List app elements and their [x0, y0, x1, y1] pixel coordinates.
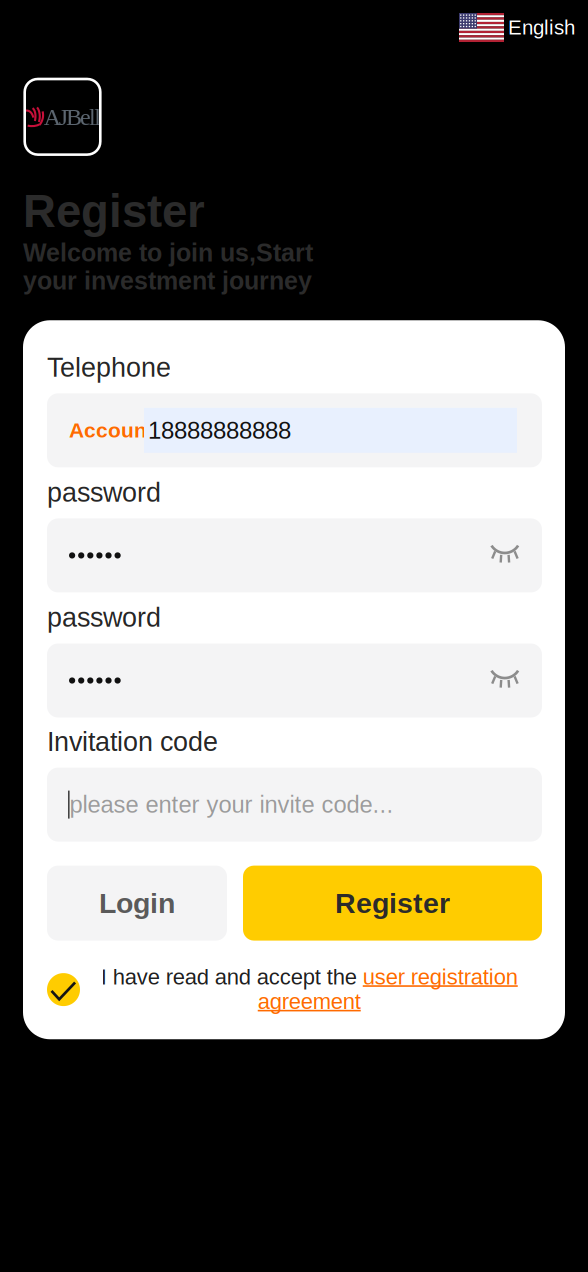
- staticText: Register: [23, 186, 205, 237]
- staticText: Telephone: [47, 352, 171, 382]
- button[interactable]: Register: [243, 866, 542, 941]
- staticText: password: [47, 477, 161, 507]
- staticText: Account: [69, 419, 154, 442]
- staticText: Register: [335, 887, 450, 919]
- staticText: 18888888888: [148, 417, 291, 444]
- staticText: password: [47, 602, 161, 632]
- staticText: Welcome to join us,Start your investment…: [23, 239, 313, 295]
- staticText: Invitation code: [47, 726, 218, 757]
- button[interactable]: I have read and accept the user registra…: [100, 965, 518, 1014]
- button[interactable]: Show password: [491, 670, 519, 688]
- staticText: please enter your invite code...: [70, 791, 394, 818]
- button[interactable]: Login: [47, 866, 227, 941]
- staticText: Login: [99, 887, 175, 919]
- staticText: AJBell: [44, 103, 101, 130]
- button[interactable]: Accept user registration agreement: [47, 973, 80, 1006]
- button[interactable]: Show password: [491, 545, 519, 563]
- button[interactable]: English: [459, 13, 575, 42]
- staticText: English: [508, 16, 575, 39]
- staticText: I have read and accept the user registra…: [100, 965, 517, 1014]
